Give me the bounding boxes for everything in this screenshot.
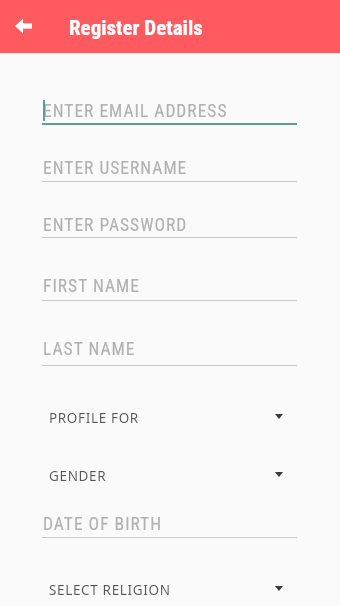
button[interactable]: ENTER PASSWORD (0, 206, 340, 241)
button[interactable]: ENTER USERNAME (0, 149, 340, 185)
staticText: Register Details (69, 16, 203, 41)
staticText: DATE OF BIRTH (43, 514, 163, 535)
staticText: SELECT RELIGION (49, 581, 171, 599)
button[interactable]: FIRST NAME (0, 267, 340, 304)
button[interactable]: PROFILE FOR (0, 399, 340, 437)
button[interactable]: DATE OF BIRTH (0, 505, 340, 541)
button[interactable]: GENDER (0, 457, 340, 495)
button[interactable]: SELECT RELIGION (0, 571, 340, 606)
staticText: ENTER USERNAME (43, 158, 188, 179)
staticText: PROFILE FOR (49, 409, 139, 427)
staticText: LAST NAME (43, 339, 136, 360)
staticText: GENDER (49, 467, 107, 485)
staticText: ENTER EMAIL ADDRESS (43, 101, 228, 122)
button[interactable]: Navigate up (7, 10, 40, 42)
button[interactable]: ENTER EMAIL ADDRESS (0, 92, 340, 127)
staticText: ENTER PASSWORD (43, 215, 188, 236)
button[interactable]: LAST NAME (0, 330, 340, 369)
staticText: FIRST NAME (43, 276, 140, 297)
